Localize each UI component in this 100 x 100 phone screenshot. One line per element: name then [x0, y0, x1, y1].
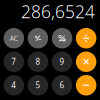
button[interactable]: 5 — [28, 75, 48, 95]
button[interactable]: 9 — [52, 51, 72, 72]
staticText: 4 — [11, 80, 16, 90]
button[interactable]: Multiply — [76, 51, 96, 72]
staticText: 286,6524 — [21, 0, 95, 23]
staticText: 6 — [60, 80, 65, 90]
button[interactable]: Subtract — [76, 75, 96, 95]
staticText: 9 — [60, 56, 65, 67]
button[interactable]: 4 — [4, 75, 24, 95]
button[interactable]: Divide — [76, 28, 96, 48]
staticText: 8 — [35, 56, 40, 67]
button[interactable]: All clear — [4, 28, 24, 48]
button[interactable]: Toggle sign — [28, 28, 48, 48]
button[interactable]: 7 — [4, 51, 24, 72]
button[interactable]: 6 — [52, 75, 72, 95]
button[interactable]: Percent — [52, 28, 72, 48]
staticText: 7 — [11, 56, 16, 67]
staticText: AC — [10, 34, 18, 43]
button[interactable]: 8 — [28, 51, 48, 72]
staticText: 5 — [35, 80, 40, 90]
